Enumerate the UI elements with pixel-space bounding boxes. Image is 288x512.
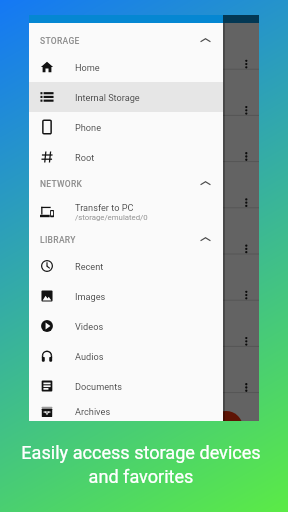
staticText: Root xyxy=(75,152,95,163)
button[interactable]: Archives xyxy=(29,401,223,421)
button[interactable]: NETWORK xyxy=(29,172,223,195)
button[interactable]: LIBRARY xyxy=(29,228,223,251)
staticText: Transfer to PC xyxy=(75,202,134,213)
staticText: Images xyxy=(75,291,106,302)
staticText: Easily access storage devices and favori… xyxy=(0,442,285,487)
button[interactable]: Transfer to PC xyxy=(29,195,223,228)
staticText: Recent xyxy=(75,261,104,272)
button[interactable]: Phone xyxy=(29,112,223,142)
staticText: Home xyxy=(75,62,100,73)
staticText: Audios xyxy=(75,351,104,362)
button[interactable]: Videos xyxy=(29,311,223,341)
staticText: Documents xyxy=(75,381,122,392)
button[interactable]: Audios xyxy=(29,341,223,371)
button[interactable]: STORAGE xyxy=(29,29,223,52)
staticText: Internal Storage xyxy=(75,92,140,103)
button[interactable]: Internal Storage xyxy=(29,82,223,112)
staticText: /storage/emulated/0 xyxy=(75,213,148,222)
button[interactable]: Home xyxy=(29,52,223,82)
staticText: LIBRARY xyxy=(40,235,76,245)
other: Collapse LIBRARY xyxy=(199,233,212,246)
button[interactable]: Images xyxy=(29,281,223,311)
button[interactable]: Recent xyxy=(29,251,223,281)
staticText: Videos xyxy=(75,321,104,332)
other: Collapse STORAGE xyxy=(199,34,212,47)
button[interactable]: Root xyxy=(29,142,223,172)
staticText: STORAGE xyxy=(40,36,80,46)
button[interactable]: Documents xyxy=(29,371,223,401)
staticText: Phone xyxy=(75,122,102,133)
staticText: Archives xyxy=(75,406,111,417)
staticText: NETWORK xyxy=(40,179,83,189)
other: Collapse NETWORK xyxy=(199,177,212,190)
